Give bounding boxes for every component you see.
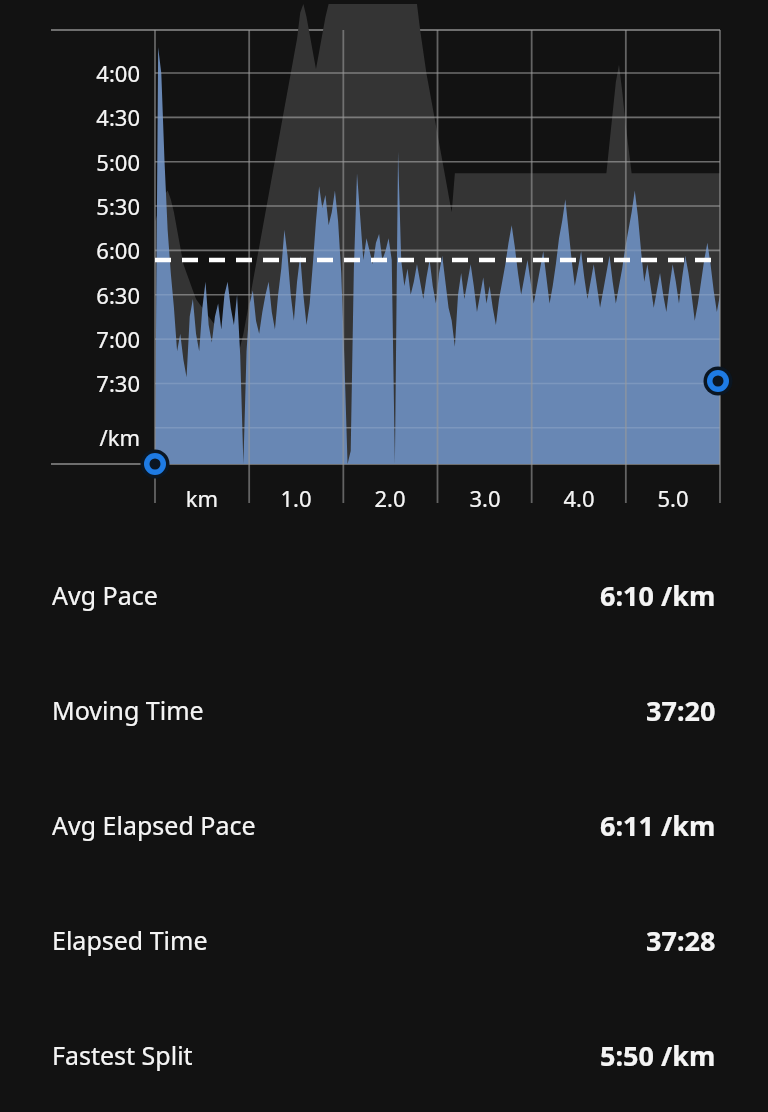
staticText: 7:30 [0, 368, 140, 398]
staticText: Moving Time [52, 693, 204, 727]
staticText: 1.0 [256, 483, 336, 513]
staticText: km [162, 483, 242, 513]
staticText: 5:00 [0, 147, 140, 177]
button[interactable]: Avg Pace [0, 565, 768, 625]
staticText: 37:20 [646, 692, 716, 729]
staticText: 6:00 [0, 235, 140, 265]
staticText: 5:30 [0, 191, 140, 221]
staticText: 6:30 [0, 280, 140, 310]
staticText: 6:11 /km [600, 807, 716, 844]
staticText: 5.0 [633, 483, 713, 513]
staticText: 2.0 [350, 483, 430, 513]
button[interactable]: Elapsed Time [0, 910, 768, 970]
staticText: Elapsed Time [52, 923, 208, 957]
staticText: 5:50 /km [600, 1037, 716, 1074]
staticText: 7:00 [0, 324, 140, 354]
button[interactable]: Avg Elapsed Pace [0, 795, 768, 855]
staticText: Avg Pace [52, 578, 158, 612]
staticText: 37:28 [646, 922, 716, 959]
staticText: /km [0, 422, 140, 452]
button[interactable]: Fastest Split [0, 1025, 768, 1085]
staticText: Avg Elapsed Pace [52, 808, 256, 842]
staticText: 6:10 /km [600, 577, 716, 614]
staticText: Fastest Split [52, 1038, 193, 1072]
button[interactable]: Moving Time [0, 680, 768, 740]
staticText: 4.0 [539, 483, 619, 513]
staticText: 4:30 [0, 102, 140, 132]
staticText: 3.0 [445, 483, 525, 513]
staticText: 4:00 [0, 58, 140, 88]
